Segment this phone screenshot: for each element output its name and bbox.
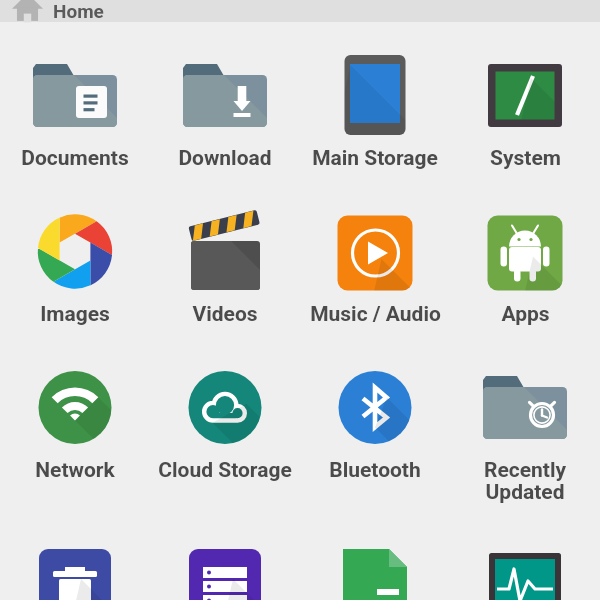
staticText: Recently Updated: [454, 458, 596, 505]
staticText: Cloud Storage: [158, 458, 292, 483]
button[interactable]: Bluetooth: [300, 334, 450, 490]
staticText: Home: [53, 0, 104, 22]
button[interactable]: Recently Updated: [450, 334, 600, 512]
staticText: Apps: [501, 302, 550, 327]
button[interactable]: Cloud Storage: [150, 334, 300, 490]
button[interactable]: Monitor: [450, 512, 600, 600]
button[interactable]: Spreadsheets: [300, 512, 450, 600]
button[interactable]: Main Storage: [300, 22, 450, 178]
button[interactable]: Download: [150, 22, 300, 178]
button[interactable]: Videos: [150, 178, 300, 334]
staticText: Music / Audio: [310, 302, 441, 327]
other: Home: [12, 0, 43, 22]
button[interactable]: Apps: [450, 178, 600, 334]
button[interactable]: Music / Audio: [300, 178, 450, 334]
staticText: Bluetooth: [329, 458, 421, 483]
button[interactable]: Network: [0, 334, 150, 490]
button[interactable]: Images: [0, 178, 150, 334]
button[interactable]: System: [450, 22, 600, 178]
staticText: Download: [178, 146, 272, 171]
button[interactable]: Database: [150, 512, 300, 600]
staticText: System: [490, 146, 561, 171]
button[interactable]: Home: [0, 0, 600, 22]
button[interactable]: Trash: [0, 512, 150, 600]
staticText: Documents: [21, 146, 129, 171]
staticText: Images: [40, 302, 110, 327]
button[interactable]: Documents: [0, 22, 150, 178]
staticText: Videos: [192, 302, 258, 327]
staticText: Network: [35, 458, 115, 483]
staticText: Main Storage: [312, 146, 438, 171]
